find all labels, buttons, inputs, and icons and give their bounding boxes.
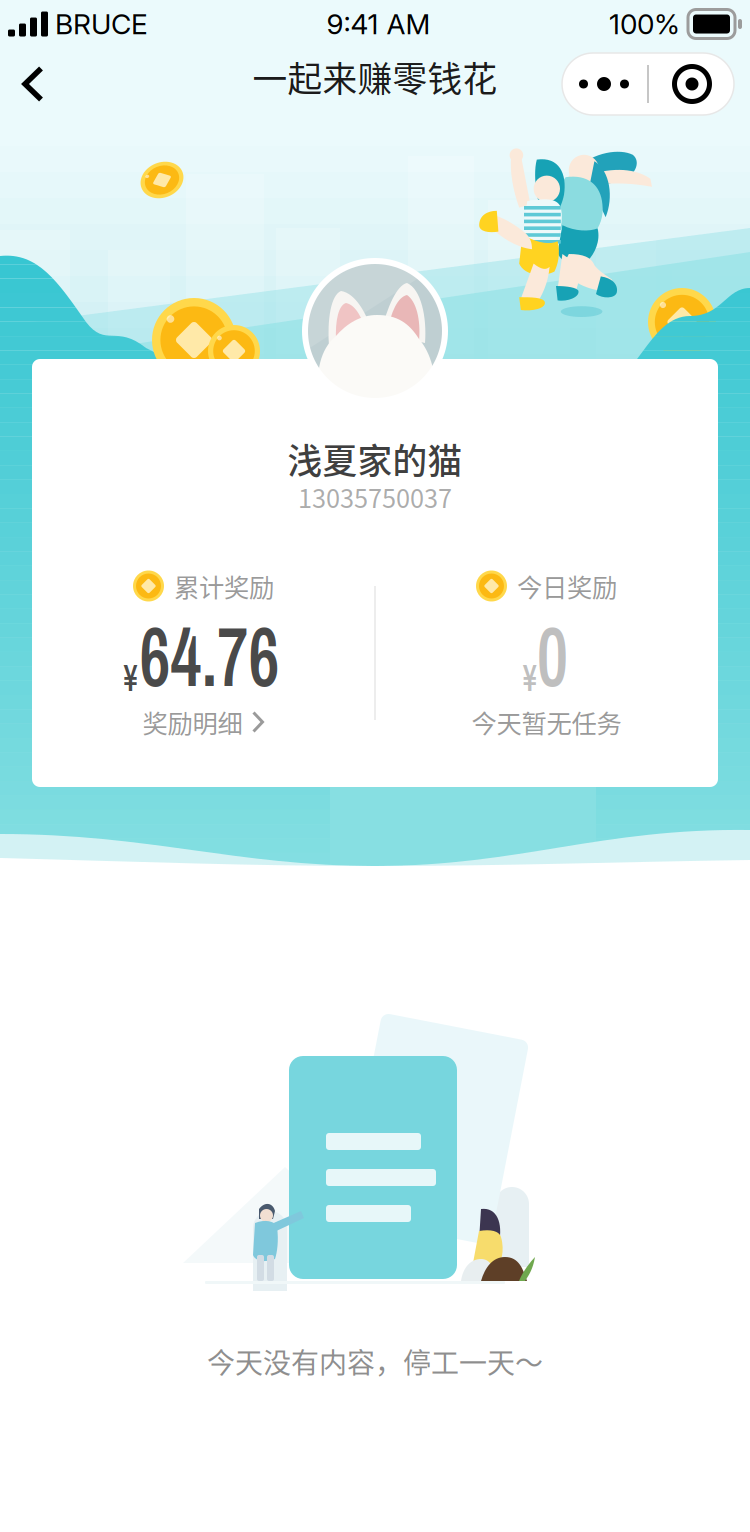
staticText: ¥	[122, 652, 139, 703]
button[interactable]: More options	[562, 53, 734, 115]
staticText: 今日奖励	[517, 568, 617, 604]
staticText: 奖励明细	[142, 704, 242, 740]
staticText: 累计奖励	[174, 568, 274, 604]
button[interactable]: Back	[2, 48, 64, 120]
staticText: 13035750037	[298, 479, 452, 515]
staticText: 今天没有内容，停工一天～	[207, 1341, 543, 1381]
staticText: 今天暂无任务	[471, 704, 621, 740]
staticText: 0	[533, 600, 571, 712]
staticText: 浅夏家的猫	[287, 434, 462, 484]
staticText: 64.76	[124, 600, 295, 712]
staticText: BRUCE	[55, 7, 148, 41]
button[interactable]: 累计奖励	[32, 359, 375, 787]
staticText: ¥	[521, 652, 538, 703]
staticText: 一起来赚零钱花	[252, 52, 497, 102]
staticText: 100%	[609, 7, 680, 41]
staticText: 9:41 AM	[326, 7, 430, 41]
